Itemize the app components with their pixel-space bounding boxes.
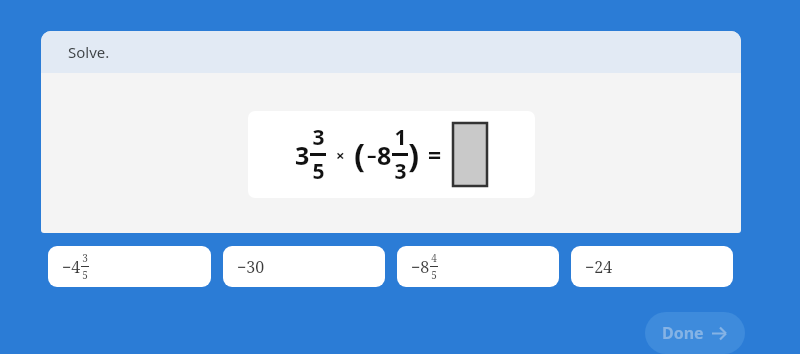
button[interactable]: −8 — [397, 246, 559, 287]
staticText: Done — [662, 322, 704, 344]
button[interactable]: −4 — [48, 246, 211, 287]
button[interactable]: −30 — [223, 246, 385, 287]
staticText: 3 — [394, 157, 407, 186]
staticText: 3 — [295, 138, 310, 172]
staticText: −24 — [585, 256, 613, 278]
staticText: 8 — [377, 138, 392, 172]
staticText: −30 — [237, 256, 265, 278]
staticText: ( — [354, 132, 366, 177]
button[interactable]: −24 — [571, 246, 733, 287]
staticText: 5 — [431, 268, 437, 282]
staticText: – — [367, 142, 377, 168]
button[interactable]: Answer input — [452, 122, 488, 187]
staticText: 5 — [82, 268, 88, 282]
staticText: = — [428, 139, 442, 170]
staticText: −8 — [411, 256, 430, 278]
staticText: Solve. — [68, 42, 110, 62]
staticText: × — [336, 145, 345, 165]
staticText: 4 — [431, 251, 437, 265]
button[interactable]: Done — [645, 312, 745, 354]
staticText: 3 — [312, 123, 325, 152]
staticText: −4 — [62, 256, 81, 278]
staticText: 3 — [82, 251, 88, 265]
staticText: 1 — [394, 123, 407, 152]
staticText: 5 — [312, 157, 325, 186]
staticText: ) — [408, 132, 420, 177]
